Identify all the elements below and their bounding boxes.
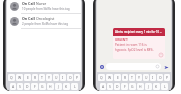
staticText: G	[131, 84, 134, 89]
button[interactable]: H	[47, 83, 54, 90]
staticText: I	[62, 75, 64, 80]
button[interactable]: F	[121, 83, 128, 90]
staticText: Q	[10, 75, 13, 80]
staticText: P	[76, 75, 79, 80]
staticText: Y	[138, 75, 140, 80]
staticText: H	[49, 84, 52, 89]
button[interactable]: G	[129, 83, 136, 90]
staticText: Q	[100, 75, 103, 80]
staticText: W	[108, 75, 112, 80]
button[interactable]: L	[71, 83, 78, 90]
staticText: T	[41, 75, 43, 80]
button[interactable]: R	[32, 74, 38, 81]
button[interactable]: S	[107, 83, 113, 90]
staticText: 10 people from SkilRx have this tag	[22, 7, 70, 11]
staticText: Patient in room 116 is	[115, 43, 147, 47]
staticText: 2 people from SkilRx have this tag	[22, 22, 68, 26]
button[interactable]: D	[114, 83, 120, 90]
staticText: Y	[48, 75, 50, 80]
button[interactable]: U	[53, 74, 59, 81]
staticText: K	[65, 84, 68, 89]
staticText: O	[159, 75, 162, 80]
button[interactable]: P	[74, 74, 80, 81]
staticText: G	[41, 84, 44, 89]
button[interactable]: W	[16, 74, 23, 81]
staticText: R	[124, 75, 127, 80]
button[interactable]: F	[31, 83, 38, 90]
staticText: I	[152, 75, 154, 80]
button[interactable]: Q	[8, 74, 15, 81]
staticText: D	[26, 84, 29, 89]
button[interactable]: O	[67, 74, 73, 81]
staticText: J	[148, 84, 149, 89]
staticText: F	[34, 84, 36, 89]
button[interactable]: T	[39, 74, 45, 81]
button[interactable]: R	[122, 74, 128, 81]
staticText: K	[155, 84, 158, 89]
staticText: E	[27, 75, 29, 80]
staticText: J	[58, 84, 59, 89]
button[interactable]: G	[39, 83, 46, 90]
button[interactable]: On Call	[7, 0, 81, 13]
staticText: On Call	[22, 1, 35, 6]
staticText: A	[102, 84, 105, 89]
staticText: O	[69, 75, 72, 80]
button[interactable]: E	[24, 74, 31, 81]
staticText: S	[19, 84, 21, 89]
button[interactable]: J	[55, 83, 62, 90]
button[interactable]: H	[137, 83, 144, 90]
staticText: L	[164, 84, 166, 89]
button[interactable]: U	[143, 74, 149, 81]
button[interactable]: W	[106, 74, 113, 81]
button[interactable]: K	[153, 83, 160, 90]
button[interactable]: J	[145, 83, 152, 90]
staticText: D	[116, 84, 119, 89]
staticText: On Call	[22, 16, 35, 21]
staticText: URGENT!	[115, 38, 128, 42]
staticText: T	[131, 75, 133, 80]
button[interactable]: K	[63, 83, 70, 90]
button[interactable]: Y	[46, 74, 52, 81]
staticText: P	[166, 75, 169, 80]
button[interactable]: Send	[163, 64, 169, 70]
staticText: F	[124, 84, 126, 89]
staticText: Alerts: recipient every 1 min for 10 min	[115, 30, 163, 34]
button[interactable]: D	[24, 83, 30, 90]
staticText: H	[139, 84, 142, 89]
button[interactable]: Q	[98, 74, 105, 81]
button[interactable]: On Call	[7, 14, 81, 28]
button[interactable]: P	[164, 74, 170, 81]
button[interactable]: Y	[136, 74, 142, 81]
button[interactable]: Add attachment	[99, 64, 104, 69]
button[interactable]: O	[157, 74, 163, 81]
button[interactable]: A	[10, 83, 16, 90]
staticText: W	[18, 75, 22, 80]
staticText: hypoxic. SpO2 level is 88%.	[115, 48, 154, 52]
button[interactable]: Alerts: recipient every 1 min for 10 min	[113, 28, 165, 59]
staticText: L	[74, 84, 76, 89]
staticText: U	[145, 75, 148, 80]
staticText: Nurse	[36, 1, 47, 6]
button[interactable]: L	[161, 83, 168, 90]
button[interactable]: I	[150, 74, 156, 81]
staticText: R	[34, 75, 37, 80]
staticText: E	[117, 75, 119, 80]
button[interactable]: A	[100, 83, 106, 90]
staticText: Oncologist	[36, 16, 55, 21]
button[interactable]	[106, 63, 161, 70]
staticText: U	[55, 75, 58, 80]
button[interactable]: E	[114, 74, 121, 81]
staticText: A	[12, 84, 15, 89]
staticText: S	[109, 84, 111, 89]
button[interactable]: S	[17, 83, 23, 90]
button[interactable]: T	[129, 74, 135, 81]
button[interactable]: I	[60, 74, 66, 81]
